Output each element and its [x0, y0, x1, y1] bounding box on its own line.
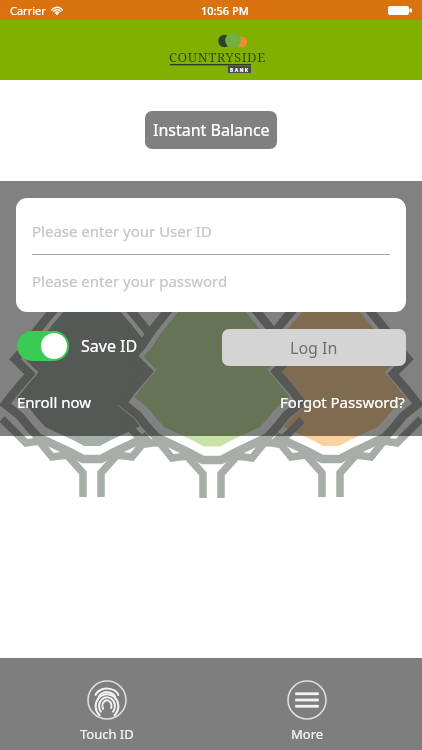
staticText: 10:56 PM: [201, 3, 249, 18]
staticText: COUNTRYSIDE: [169, 48, 266, 66]
button[interactable]: Forgot Password?: [280, 392, 405, 412]
staticText: Please enter your User ID: [32, 221, 212, 241]
staticText: Log In: [290, 337, 338, 359]
button[interactable]: More: [247, 680, 367, 743]
staticText: Instant Balance: [153, 119, 270, 141]
button[interactable]: Save ID: [17, 331, 138, 361]
button[interactable]: Enroll now: [17, 392, 92, 412]
staticText: More: [291, 725, 324, 743]
button[interactable]: Touch ID: [47, 680, 167, 743]
staticText: Touch ID: [80, 725, 134, 743]
staticText: Forgot Password?: [280, 392, 405, 412]
staticText: Please enter your password: [32, 271, 228, 291]
staticText: Enroll now: [17, 392, 92, 412]
button[interactable]: Instant Balance: [145, 111, 277, 149]
button[interactable]: Please enter your password: [32, 260, 406, 298]
button[interactable]: Please enter your User ID: [32, 211, 406, 249]
staticText: Carrier: [10, 3, 46, 18]
staticText: B A N K: [230, 67, 249, 74]
staticText: Save ID: [81, 335, 138, 357]
button[interactable]: Log In: [222, 329, 406, 366]
